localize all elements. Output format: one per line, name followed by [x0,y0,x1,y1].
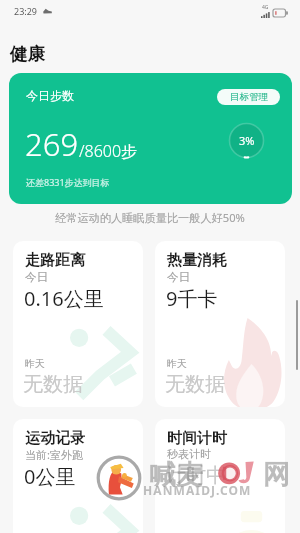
staticText: 运动记录 [25,429,85,448]
staticText: 今日步数 [26,88,74,103]
staticText: 0公里 [24,463,76,490]
staticText: 目标管理 [230,91,268,103]
staticText: 当前:室外跑 [25,447,83,462]
button[interactable]: 目标管理 [217,89,280,105]
staticText: 昨天 [167,357,187,370]
staticText: /8600步 [79,140,138,162]
staticText: 计时中 [166,463,226,488]
staticText: 269 [25,123,79,165]
staticText: 网 [263,458,290,492]
staticText: 昨天 [25,357,45,370]
staticText: 3% [239,133,255,148]
staticText: 9千卡 [166,285,218,312]
staticText: 时间计时 [167,429,227,448]
staticText: HANMAIDJ.COM [143,482,252,498]
staticText: 无数据 [23,372,83,397]
button[interactable]: 运动记录 [13,419,143,533]
staticText: 今日 [25,270,48,284]
staticText: 经常运动的人睡眠质量比一般人好50% [55,210,245,225]
staticText: 4G [262,4,269,11]
button[interactable]: 时间计时 [155,419,285,533]
staticText: 0.16公里 [24,285,104,312]
staticText: 23:29 [14,5,38,17]
staticText: 今日 [167,270,190,284]
button[interactable]: 今日步数 [9,73,292,204]
staticText: 秒表计时 [167,447,211,461]
staticText: 喊麦 [149,458,203,492]
staticText: 还差8331步达到目标 [26,176,110,188]
button[interactable]: 走路距离 [13,241,143,407]
staticText: 热量消耗 [167,251,227,270]
staticText: 无数据 [165,372,225,397]
button[interactable]: 热量消耗 [155,241,285,407]
staticText: 健康 [10,43,45,65]
staticText: 走路距离 [25,251,85,270]
